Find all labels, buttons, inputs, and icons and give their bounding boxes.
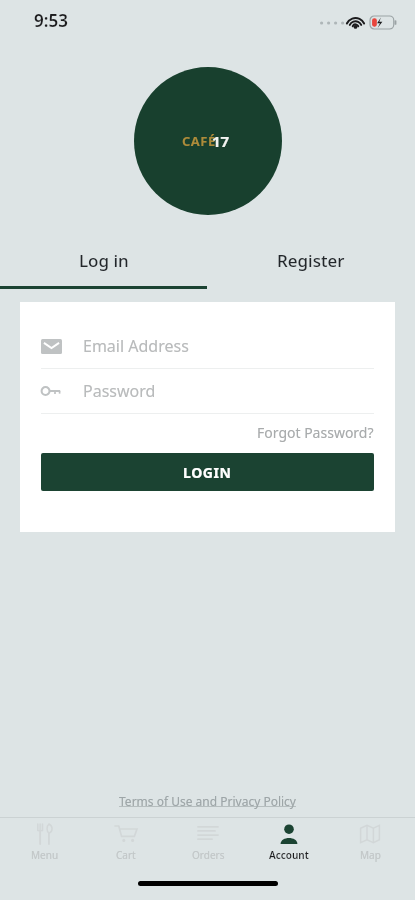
button[interactable]: LOGIN [41, 453, 374, 491]
staticText: 9:53 [34, 9, 68, 32]
button[interactable]: Menu [9, 823, 81, 862]
staticText: LOGIN [183, 463, 232, 482]
staticText: Password [83, 380, 156, 402]
button[interactable]: Cart [90, 823, 162, 862]
staticText: Cart [116, 848, 136, 862]
button[interactable]: Password [41, 369, 374, 413]
staticText: CAF [182, 132, 208, 150]
staticText: Map [360, 848, 381, 862]
staticText: Register [277, 249, 345, 272]
button[interactable]: Terms of Use and Privacy Policy [119, 793, 296, 809]
staticText: Orders [192, 848, 225, 862]
button[interactable]: Forgot Password? [257, 423, 374, 442]
staticText: Menu [31, 848, 59, 862]
button[interactable]: Orders [172, 823, 244, 862]
staticText: 17 [212, 131, 230, 151]
staticText: Account [269, 848, 309, 862]
button[interactable]: Register [207, 243, 415, 277]
button[interactable]: Map [334, 823, 406, 862]
staticText: Log in [79, 249, 129, 272]
staticText: É [208, 132, 216, 150]
button[interactable]: Email Address [41, 324, 374, 368]
button[interactable]: Account [253, 823, 325, 862]
staticText: Email Address [83, 335, 189, 357]
button[interactable]: Log in [0, 243, 207, 277]
